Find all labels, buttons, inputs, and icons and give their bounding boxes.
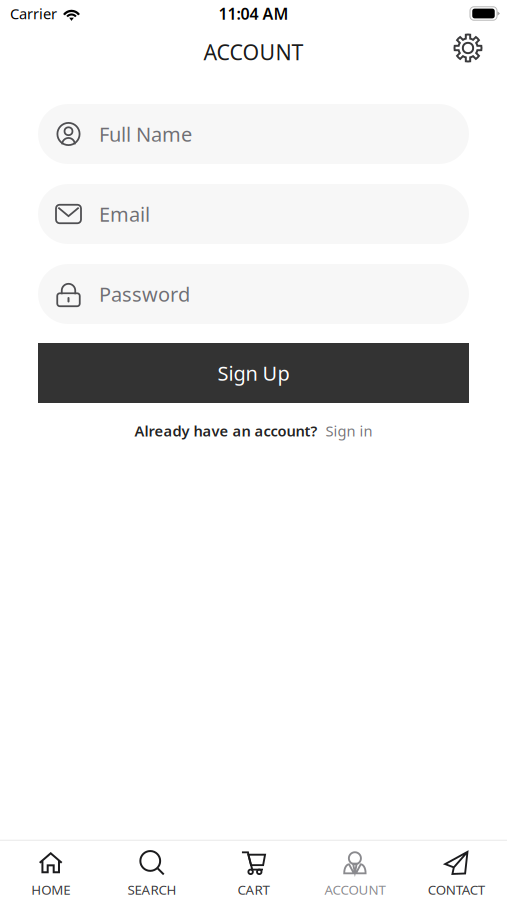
button[interactable]: SEARCH [101,841,203,900]
staticText: Sign in [325,421,372,440]
button[interactable]: HOME [0,841,101,900]
staticText: ACCOUNT [203,38,303,66]
staticText: ACCOUNT [324,881,385,898]
button[interactable]: Already have an account? [38,417,469,444]
button[interactable]: Password [38,264,469,324]
button[interactable]: Full Name [38,104,469,164]
staticText: Already have an account? [134,421,317,440]
button[interactable]: CONTACT [406,841,507,900]
staticText: Full Name [99,121,192,147]
staticText: CONTACT [428,881,485,898]
staticText: CART [237,881,269,898]
staticText: Email [99,201,150,227]
button[interactable]: ACCOUNT [304,841,406,900]
staticText: 11:04 AM [218,3,288,24]
staticText: HOME [31,881,70,898]
staticText: Carrier [10,4,57,23]
button[interactable]: Email [38,184,469,244]
staticText: Password [99,281,190,307]
button[interactable]: CART [203,841,304,900]
button[interactable]: Sign Up [38,343,469,403]
staticText: SEARCH [128,881,177,898]
staticText: Sign Up [217,360,289,386]
button[interactable]: Settings [446,26,490,70]
